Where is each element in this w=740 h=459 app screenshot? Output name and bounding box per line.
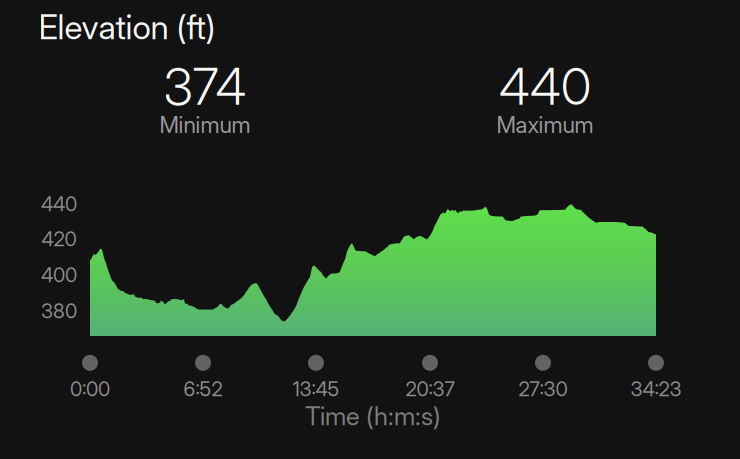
button[interactable]: Elevation chart, 374 to 440 feet xyxy=(90,203,656,336)
staticText: 34:23 xyxy=(630,377,681,401)
staticText: Elevation (ft) xyxy=(38,7,215,47)
staticText: 420 xyxy=(41,227,76,251)
staticText: Time (h:m:s) xyxy=(305,401,441,431)
staticText: 13:45 xyxy=(292,377,339,401)
staticText: 440 xyxy=(41,192,77,216)
staticText: 20:37 xyxy=(405,377,454,401)
staticText: Maximum xyxy=(496,111,593,138)
staticText: 440 xyxy=(499,56,591,117)
staticText: 374 xyxy=(163,56,246,117)
staticText: Minimum xyxy=(159,111,250,138)
staticText: 6:52 xyxy=(183,377,222,401)
staticText: 400 xyxy=(41,263,77,287)
staticText: 27:30 xyxy=(518,377,567,401)
staticText: 0:00 xyxy=(70,377,110,401)
staticText: 380 xyxy=(41,299,77,323)
